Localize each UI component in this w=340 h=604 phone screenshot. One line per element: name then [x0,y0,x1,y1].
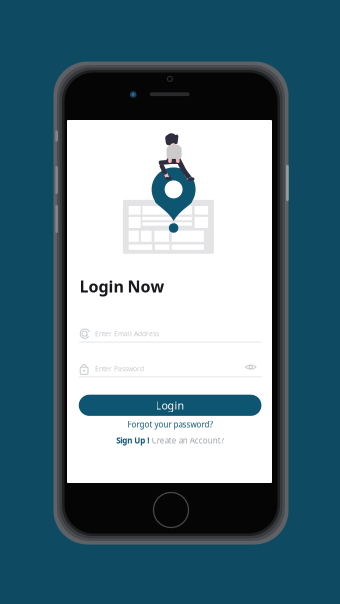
staticText: Forgot your password? [128,419,213,430]
button[interactable]: Login [79,395,261,416]
staticText: Create an Account? [152,435,224,446]
staticText: Login [156,398,185,412]
button[interactable]: Sign Up ! [100,434,240,447]
button[interactable]: Forgot your password? [105,418,235,431]
staticText: Login Now [80,276,165,297]
staticText: Enter Password [95,364,144,373]
staticText: Enter Email Address [95,329,159,338]
staticText: Sign Up ! [116,435,149,446]
